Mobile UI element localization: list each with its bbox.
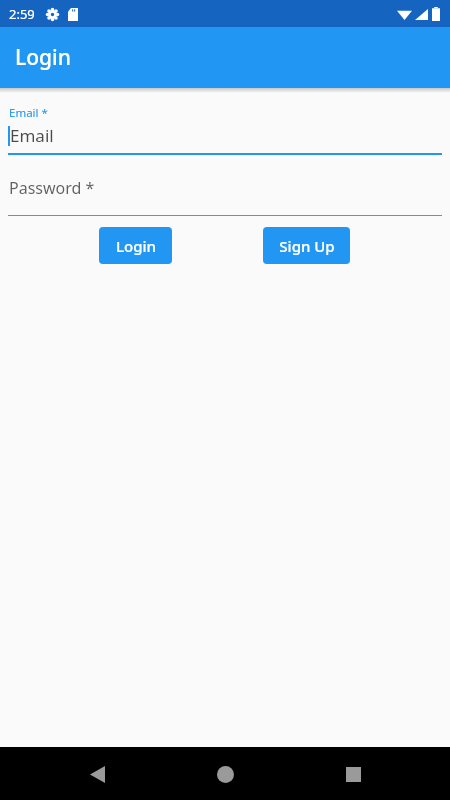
button[interactable]: Sign Up [263,227,350,264]
button[interactable]: Password * [9,177,442,199]
button[interactable]: Recent apps [332,753,374,795]
staticText: Password * [9,177,95,199]
staticText: Login [15,43,71,72]
staticText: Email [10,124,54,147]
button[interactable]: Email [8,124,442,147]
staticText: Sign Up [279,236,335,256]
button[interactable]: Home [204,753,246,795]
button[interactable]: Back [76,753,118,795]
button[interactable]: Login [99,227,172,264]
staticText: Login [116,236,156,256]
staticText: 2:59 [9,5,35,23]
staticText: Email * [9,105,48,121]
